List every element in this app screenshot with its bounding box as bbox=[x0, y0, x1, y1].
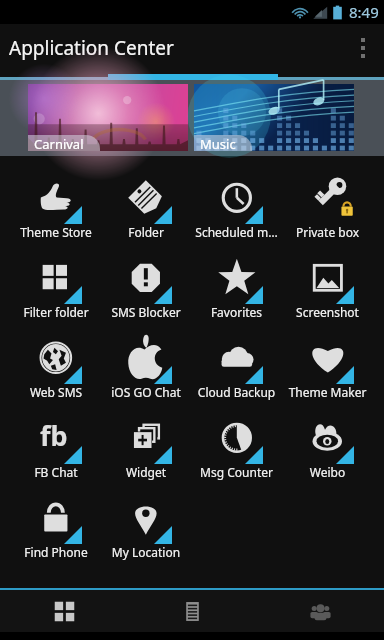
button[interactable]: SMS Blocker bbox=[101, 256, 191, 336]
button[interactable]: Contacts bbox=[256, 590, 384, 632]
staticText: iOS GO Chat bbox=[102, 384, 190, 400]
staticText: Private box bbox=[283, 224, 372, 240]
button[interactable]: Find Phone bbox=[11, 496, 101, 576]
staticText: Favorites bbox=[192, 304, 281, 320]
button[interactable]: Web SMS bbox=[11, 336, 101, 416]
button[interactable]: fb bbox=[11, 416, 101, 496]
staticText: Scheduled m… bbox=[192, 224, 281, 240]
button[interactable]: More options bbox=[342, 24, 384, 72]
button[interactable]: iOS GO Chat bbox=[101, 336, 191, 416]
staticText: Web SMS bbox=[12, 384, 100, 400]
button[interactable] bbox=[108, 74, 278, 80]
staticText: FB Chat bbox=[12, 464, 100, 480]
staticText: Music bbox=[200, 135, 236, 151]
button[interactable]: Theme Store bbox=[11, 176, 101, 256]
staticText: Screenshot bbox=[283, 304, 372, 320]
staticText: Folder bbox=[102, 224, 190, 240]
staticText: Find Phone bbox=[12, 544, 100, 560]
staticText: Carnival bbox=[34, 135, 84, 151]
button[interactable]: Msg Counter bbox=[191, 416, 282, 496]
staticText: 8:49 bbox=[349, 2, 379, 22]
button[interactable]: Theme Maker bbox=[282, 336, 373, 416]
staticText: Theme Store bbox=[12, 224, 100, 240]
button[interactable]: My Location bbox=[101, 496, 191, 576]
staticText: Weibo bbox=[283, 464, 372, 480]
staticText: fb bbox=[40, 417, 68, 454]
staticText: Application Center bbox=[9, 35, 174, 61]
button[interactable]: Scheduled m… bbox=[191, 176, 282, 256]
button[interactable]: Carnival bbox=[28, 84, 188, 151]
staticText: Filter folder bbox=[12, 304, 100, 320]
staticText: My Location bbox=[102, 544, 190, 560]
staticText: Theme Maker bbox=[283, 384, 372, 400]
staticText: Cloud Backup bbox=[192, 384, 281, 400]
staticText: Msg Counter bbox=[192, 464, 281, 480]
button[interactable]: Screenshot bbox=[282, 256, 373, 336]
button[interactable]: Music bbox=[194, 84, 354, 151]
button[interactable]: Messages bbox=[128, 590, 256, 632]
button[interactable]: Favorites bbox=[191, 256, 282, 336]
button[interactable]: Folder bbox=[101, 176, 191, 256]
staticText: SMS Blocker bbox=[102, 304, 190, 320]
button[interactable]: Widget bbox=[101, 416, 191, 496]
button[interactable]: Apps bbox=[0, 590, 128, 632]
button[interactable]: Weibo bbox=[282, 416, 373, 496]
button[interactable]: Cloud Backup bbox=[191, 336, 282, 416]
staticText: Widget bbox=[102, 464, 190, 480]
button[interactable]: Filter folder bbox=[11, 256, 101, 336]
button[interactable]: Private box bbox=[282, 176, 373, 256]
